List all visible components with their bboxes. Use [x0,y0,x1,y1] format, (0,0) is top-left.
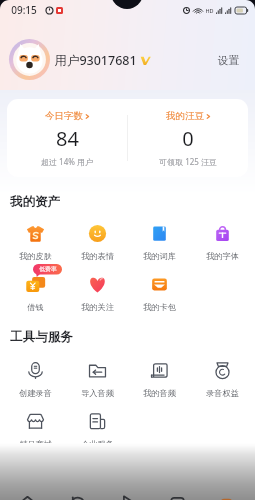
staticText: 0 [182,125,194,152]
button[interactable]: Profile [212,492,240,500]
staticText: 可领取 125 汪豆 [159,156,217,167]
staticText: 我的表情 [81,251,114,261]
staticText: 09:15 [11,3,37,17]
button[interactable]: 我的音频 [128,360,191,398]
staticText: 超过 14% 用户 [41,156,93,167]
staticText: 我的卡包 [143,302,176,312]
button[interactable]: 设置 [214,50,243,71]
staticText: 导入音频 [81,388,114,398]
button[interactable]: 我的汪豆 [128,99,248,177]
staticText: 我的词库 [143,251,176,261]
button[interactable]: 我的字体 [191,223,254,261]
staticText: 我的音频 [143,388,176,398]
button[interactable]: 企业服务 [66,411,128,449]
staticText: 用户93017681 [54,52,137,69]
staticText: 我的关注 [81,302,114,312]
staticText: 创建录音 [19,388,52,398]
staticText: 我的皮肤 [19,251,52,261]
staticText: 工具与服务 [10,329,73,345]
staticText: 企业服务 [81,439,114,449]
button[interactable]: 导入音频 [66,360,128,398]
button[interactable]: 我的卡包 [128,274,191,312]
staticText: 精品商城 [19,439,52,449]
staticText: 我的资产 [10,194,60,210]
staticText: 我的字体 [206,251,239,261]
staticText: 录音权益 [206,388,239,398]
staticText: 今日字数 [45,110,83,122]
staticText: 84 [56,125,79,152]
button[interactable]: 我的关注 [66,274,128,312]
staticText: 低费率 [39,265,57,272]
button[interactable]: 我的表情 [66,223,128,261]
staticText: 设置 [218,54,239,67]
staticText: 借钱 [27,302,44,312]
button[interactable]: 精品商城 [4,411,66,449]
staticText: 我的汪豆 [166,110,204,122]
staticText: HD [205,7,214,14]
button[interactable]: 录音权益 [191,360,254,398]
button[interactable]: 创建录音 [4,360,66,398]
button[interactable]: Discover [64,492,92,500]
button[interactable]: Home [13,492,41,500]
button[interactable]: 借钱 [4,274,66,312]
button[interactable]: 我的皮肤 [4,223,66,261]
button[interactable]: 我的词库 [128,223,191,261]
button[interactable]: 今日字数 [7,99,127,177]
button[interactable]: Messages [163,492,191,500]
button[interactable]: Create [113,492,141,500]
